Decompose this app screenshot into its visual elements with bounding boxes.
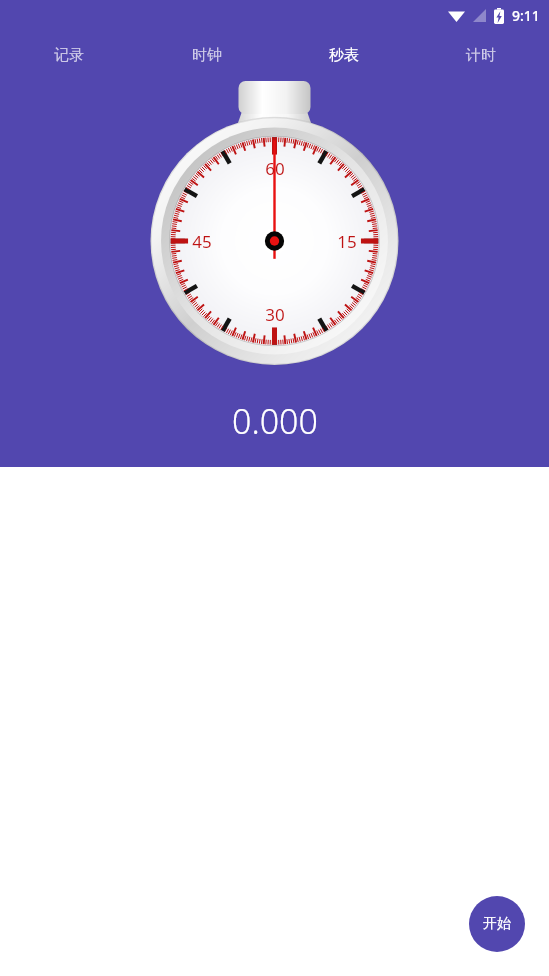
button[interactable]: 秒表 <box>275 30 412 80</box>
staticText: 记录 <box>54 46 84 65</box>
button[interactable]: 时钟 <box>138 30 275 80</box>
other: Battery charging <box>494 8 504 24</box>
staticText: 计时 <box>466 46 496 65</box>
staticText: 30 <box>265 303 285 326</box>
staticText: 45 <box>192 230 212 253</box>
other: Mobile signal <box>473 9 486 22</box>
staticText: 15 <box>337 230 357 253</box>
button[interactable]: 开始 <box>469 896 525 952</box>
button[interactable]: 记录 <box>0 30 138 80</box>
staticText: 0.000 <box>232 398 318 444</box>
button[interactable]: 计时 <box>412 30 549 80</box>
staticText: 60 <box>265 157 285 180</box>
staticText: 9:11 <box>512 6 540 25</box>
staticText: 时钟 <box>192 46 222 65</box>
other: Wi-Fi <box>448 9 465 22</box>
staticText: 开始 <box>483 915 511 933</box>
staticText: 秒表 <box>329 46 359 65</box>
